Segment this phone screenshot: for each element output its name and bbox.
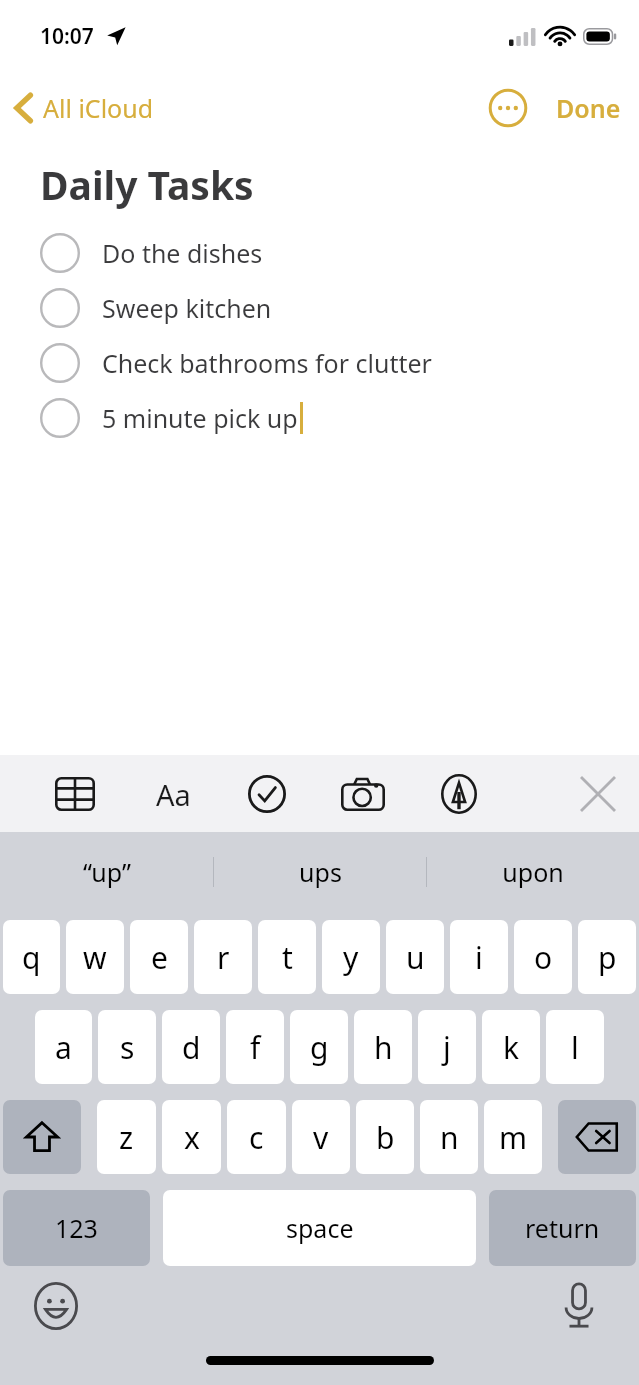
button[interactable]: o [514,920,572,994]
button[interactable]: y [322,920,380,994]
staticText: space [286,1211,354,1245]
staticText: b [376,1117,395,1158]
button[interactable]: q [3,920,60,994]
staticText: u [406,937,425,978]
staticText: y [343,937,359,978]
staticText: o [534,937,553,978]
button[interactable]: Dictation [553,1280,605,1332]
button[interactable]: Checklist [244,771,290,817]
button[interactable]: 5 minute pick up [40,390,639,445]
button[interactable]: m [484,1100,542,1174]
staticText: d [182,1027,201,1068]
staticText: e [151,937,168,978]
button[interactable]: z [97,1100,156,1174]
button[interactable]: s [98,1010,156,1084]
staticText: x [184,1117,200,1158]
button[interactable]: u [386,920,444,994]
staticText: r [217,937,230,978]
button[interactable]: Check bathrooms for clutter [40,335,639,390]
button[interactable]: t [258,920,316,994]
button[interactable]: b [356,1100,414,1174]
staticText: i [475,937,483,978]
staticText: c [249,1117,264,1158]
staticText: “up” [83,855,131,889]
staticText: z [119,1117,134,1158]
button[interactable]: Do the dishes [40,225,639,280]
button[interactable]: Sweep kitchen [40,280,639,335]
button[interactable]: More options [478,78,538,138]
staticText: n [440,1117,459,1158]
staticText: ups [299,855,342,889]
staticText: Daily Tasks [40,158,254,211]
button[interactable]: return [489,1190,636,1266]
staticText: Do the dishes [102,236,263,270]
button[interactable]: All iCloud [0,85,166,131]
button[interactable]: Markup [436,771,482,817]
button[interactable]: Done [538,81,639,135]
button[interactable]: Text format [150,771,196,817]
staticText: Sweep kitchen [102,291,272,325]
staticText: 10:07 [40,22,94,51]
button[interactable]: Backspace [558,1100,636,1174]
button[interactable]: “up” [0,832,213,912]
button[interactable]: upon [427,832,639,912]
staticText: Aa [156,775,191,814]
button[interactable]: g [290,1010,348,1084]
staticText: j [443,1027,451,1068]
staticText: a [55,1027,72,1068]
staticText: All iCloud [43,91,154,125]
button[interactable]: space [163,1190,476,1266]
staticText: f [250,1027,261,1068]
button[interactable]: Close keyboard [575,771,621,817]
staticText: upon [502,855,564,889]
staticText: q [22,937,41,978]
button[interactable]: r [194,920,252,994]
button[interactable]: v [292,1100,350,1174]
staticText: Check bathrooms for clutter [102,346,432,380]
staticText: l [571,1027,579,1068]
button[interactable]: a [35,1010,92,1084]
staticText: p [598,937,617,978]
button[interactable]: k [482,1010,540,1084]
staticText: h [374,1027,393,1068]
button[interactable]: h [354,1010,412,1084]
button[interactable]: d [162,1010,220,1084]
staticText: w [83,937,107,978]
staticText: 123 [55,1211,98,1245]
button[interactable]: i [450,920,508,994]
staticText: m [499,1117,528,1158]
button[interactable]: j [418,1010,476,1084]
staticText: g [310,1027,329,1068]
button[interactable]: x [162,1100,221,1174]
button[interactable]: p [578,920,636,994]
staticText: k [503,1027,520,1068]
button[interactable]: c [227,1100,286,1174]
button[interactable]: Camera [340,771,386,817]
staticText: t [282,937,293,978]
staticText: Done [556,91,621,125]
button[interactable]: w [66,920,124,994]
button[interactable]: ups [214,832,426,912]
button[interactable]: Emoji [30,1280,82,1332]
staticText: 5 minute pick up [102,401,298,435]
button[interactable]: f [226,1010,284,1084]
button[interactable]: e [130,920,188,994]
button[interactable]: n [420,1100,478,1174]
staticText: v [313,1117,329,1158]
button[interactable]: Shift [3,1100,81,1174]
staticText: return [525,1211,600,1245]
button[interactable]: 123 [3,1190,150,1266]
staticText: s [120,1027,135,1068]
button[interactable]: l [546,1010,604,1084]
button[interactable]: Table [52,771,98,817]
